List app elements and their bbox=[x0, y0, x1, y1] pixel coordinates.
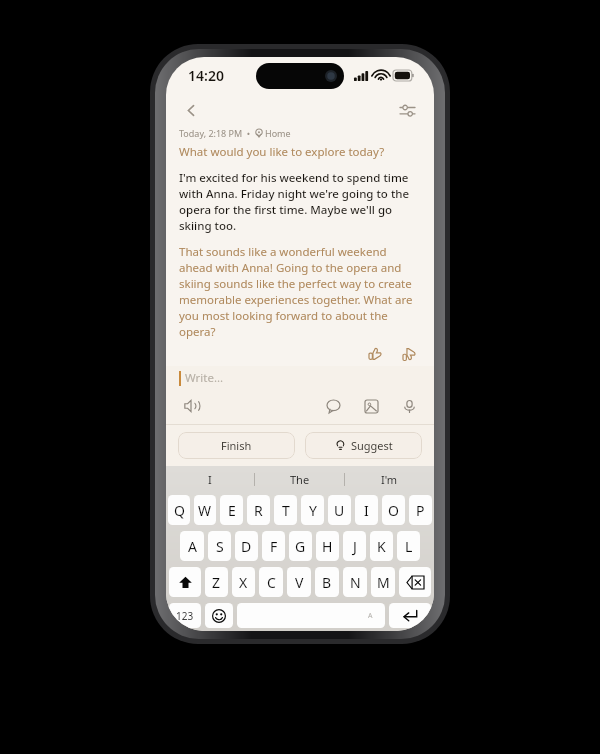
button[interactable]: Q bbox=[168, 495, 190, 525]
staticText: 123 bbox=[176, 609, 194, 623]
staticText: O bbox=[388, 501, 399, 520]
button[interactable]: Finish bbox=[178, 432, 295, 459]
staticText: Write... bbox=[185, 370, 224, 386]
button[interactable]: B bbox=[315, 567, 339, 597]
staticText: U bbox=[334, 501, 345, 520]
button[interactable]: T bbox=[274, 495, 297, 525]
staticText: Q bbox=[174, 501, 185, 520]
button[interactable]: N bbox=[343, 567, 367, 597]
staticText: I'm excited for his weekend to spend tim… bbox=[179, 170, 421, 234]
staticText: H bbox=[322, 537, 333, 556]
staticText: G bbox=[295, 537, 306, 556]
button[interactable]: X bbox=[232, 567, 255, 597]
button[interactable]: 123 bbox=[169, 603, 201, 628]
button[interactable]: Z bbox=[205, 567, 228, 597]
button[interactable]: Chat bbox=[322, 395, 344, 417]
staticText: Today, 2:18 PM • bbox=[179, 127, 251, 139]
button[interactable]: V bbox=[287, 567, 311, 597]
staticText: T bbox=[282, 501, 290, 520]
button[interactable]: Settings bbox=[390, 93, 424, 127]
button[interactable]: R bbox=[247, 495, 270, 525]
button[interactable]: Add image bbox=[360, 395, 382, 417]
button[interactable]: Return bbox=[389, 603, 431, 628]
button[interactable]: M bbox=[371, 567, 395, 597]
button[interactable]: The bbox=[255, 466, 344, 492]
button[interactable]: I'm bbox=[345, 466, 434, 492]
button[interactable]: S bbox=[208, 531, 231, 561]
button[interactable]: Shift bbox=[169, 567, 201, 597]
button[interactable]: Back bbox=[174, 93, 208, 127]
button[interactable]: L bbox=[397, 531, 420, 561]
button[interactable]: Y bbox=[301, 495, 324, 525]
button[interactable]: O bbox=[382, 495, 405, 525]
button[interactable]: W bbox=[194, 495, 216, 525]
button[interactable]: H bbox=[316, 531, 339, 561]
staticText: B bbox=[322, 573, 332, 592]
button[interactable]: Like bbox=[363, 342, 387, 366]
staticText: V bbox=[295, 573, 304, 592]
staticText: K bbox=[377, 537, 386, 556]
button[interactable]: J bbox=[343, 531, 366, 561]
button[interactable]: I bbox=[355, 495, 378, 525]
staticText: Y bbox=[309, 501, 317, 520]
staticText: The bbox=[290, 472, 310, 487]
button[interactable]: D bbox=[235, 531, 258, 561]
staticText: F bbox=[270, 537, 278, 556]
button[interactable]: I bbox=[166, 466, 254, 492]
button[interactable]: E bbox=[220, 495, 243, 525]
staticText: L bbox=[405, 537, 413, 556]
button[interactable]: F bbox=[262, 531, 285, 561]
staticText: N bbox=[350, 573, 361, 592]
staticText: I bbox=[364, 501, 369, 520]
staticText: Finish bbox=[221, 438, 252, 453]
staticText: Home bbox=[265, 127, 291, 139]
staticText: W bbox=[198, 501, 212, 520]
staticText: Z bbox=[212, 573, 221, 592]
staticText: That sounds like a wonderful weekend ahe… bbox=[179, 244, 421, 340]
staticText: I'm bbox=[381, 472, 398, 487]
button[interactable]: U bbox=[328, 495, 351, 525]
staticText: S bbox=[216, 537, 224, 556]
button[interactable]: G bbox=[289, 531, 312, 561]
staticText: P bbox=[416, 501, 425, 520]
staticText: E bbox=[228, 501, 236, 520]
staticText: J bbox=[353, 537, 357, 556]
staticText: What would you like to explore today? bbox=[179, 144, 385, 160]
button[interactable]: Dislike bbox=[397, 342, 421, 366]
staticText: I bbox=[208, 472, 212, 487]
staticText: R bbox=[254, 501, 263, 520]
button[interactable]: Speak bbox=[180, 395, 202, 417]
button[interactable]: A bbox=[180, 531, 204, 561]
staticText: A bbox=[188, 537, 197, 556]
staticText: X bbox=[239, 573, 248, 592]
staticText: M bbox=[377, 573, 390, 592]
staticText: A bbox=[368, 611, 373, 621]
button[interactable]: P bbox=[409, 495, 432, 525]
staticText: Suggest bbox=[351, 438, 393, 453]
staticText: 14:20 bbox=[188, 66, 224, 85]
button[interactable]: C bbox=[259, 567, 283, 597]
button[interactable]: A bbox=[237, 603, 385, 628]
staticText: D bbox=[241, 537, 252, 556]
button[interactable]: Voice input bbox=[398, 395, 420, 417]
button[interactable]: Emoji bbox=[205, 603, 233, 628]
staticText: C bbox=[267, 573, 276, 592]
button[interactable]: K bbox=[370, 531, 393, 561]
button[interactable]: Suggest bbox=[305, 432, 422, 459]
button[interactable]: Backspace bbox=[399, 567, 431, 597]
